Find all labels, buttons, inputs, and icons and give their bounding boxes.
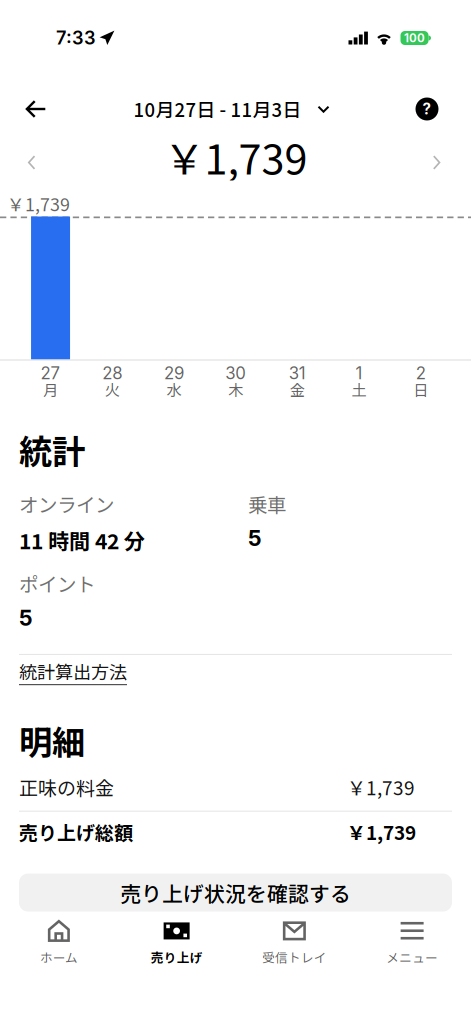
staticText: ￥1,739 bbox=[7, 190, 70, 216]
staticText: 火 bbox=[105, 378, 120, 400]
staticText: ポイント bbox=[19, 569, 95, 597]
button[interactable]: 売り上げ bbox=[118, 918, 236, 968]
staticText: ￥1,739 bbox=[347, 818, 416, 846]
button[interactable]: Next period bbox=[417, 140, 457, 184]
button[interactable]: 統計算出方法 bbox=[19, 655, 127, 685]
button[interactable]: 売り上げ状況を確認する bbox=[19, 874, 452, 912]
staticText: 土 bbox=[352, 378, 367, 400]
staticText: ホーム bbox=[40, 948, 78, 966]
staticText: 5 bbox=[248, 525, 262, 551]
button[interactable]: Help bbox=[405, 87, 449, 131]
staticText: 2 bbox=[416, 363, 426, 383]
staticText: 正味の料金 bbox=[19, 773, 114, 801]
button[interactable]: メニュー bbox=[353, 918, 471, 968]
staticText: 明細 bbox=[19, 716, 85, 764]
staticText: 統計 bbox=[19, 425, 85, 474]
staticText: 29 bbox=[164, 363, 184, 383]
staticText: 27 bbox=[40, 363, 60, 383]
staticText: 10月27日 - 11月3日 bbox=[133, 96, 301, 122]
staticText: 30 bbox=[225, 363, 246, 383]
staticText: ￥1,739 bbox=[347, 773, 415, 801]
staticText: 28 bbox=[102, 363, 122, 383]
staticText: ￥1,739 bbox=[163, 127, 307, 186]
button[interactable]: 受信トレイ bbox=[235, 918, 353, 968]
staticText: ? bbox=[422, 100, 431, 118]
button[interactable]: ホーム bbox=[0, 918, 118, 968]
staticText: 受信トレイ bbox=[262, 948, 327, 966]
staticText: 統計算出方法 bbox=[19, 658, 127, 684]
staticText: 売り上げ総額 bbox=[19, 818, 133, 846]
staticText: 木 bbox=[228, 378, 243, 400]
staticText: 水 bbox=[166, 378, 181, 400]
staticText: 売り上げ状況を確認する bbox=[120, 877, 351, 908]
staticText: メニュー bbox=[386, 948, 438, 966]
staticText: 7:33 bbox=[56, 27, 96, 49]
staticText: オンライン bbox=[19, 490, 114, 518]
button[interactable]: 10月27日 - 11月3日 bbox=[133, 87, 329, 131]
staticText: 31 bbox=[289, 363, 306, 383]
staticText: 金 bbox=[290, 378, 305, 400]
staticText: 月 bbox=[43, 378, 58, 400]
staticText: 5 bbox=[19, 604, 33, 631]
staticText: 100 bbox=[404, 31, 425, 45]
button[interactable]: Previous period bbox=[12, 140, 52, 184]
staticText: 日 bbox=[413, 378, 428, 400]
staticText: 1 bbox=[356, 363, 363, 383]
button[interactable]: Back bbox=[14, 87, 58, 131]
staticText: 乗車 bbox=[248, 490, 286, 518]
staticText: 11 時間 42 分 bbox=[19, 525, 145, 555]
staticText: 売り上げ bbox=[151, 948, 203, 966]
